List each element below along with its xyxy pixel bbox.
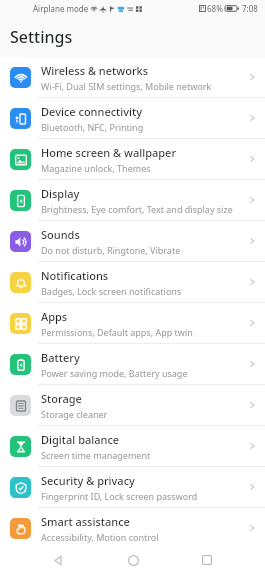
staticText: Wi-Fi, Dual SIM settings, Mobile network [41,80,212,92]
button[interactable]: Apps [0,303,265,343]
button[interactable]: Digital balance [0,426,265,466]
staticText: Storage [41,391,82,406]
button[interactable]: Home screen & wallpaper [0,139,265,179]
button[interactable]: Security & privacy [0,467,265,507]
button[interactable]: Display [0,180,265,220]
staticText: Apps [41,309,68,324]
staticText: Display [41,186,80,201]
staticText: Digital balance [41,432,120,447]
staticText: Badges, Lock screen notifications [41,285,182,297]
staticText: Power saving mode, Battery usage [41,367,188,379]
button[interactable]: Sounds [0,221,265,261]
button[interactable]: Wireless & networks [0,57,265,97]
staticText: Brightness, Eye comfort, Text and displa… [41,203,233,215]
staticText: Screen time management [41,449,151,461]
staticText: Wireless & networks [41,63,149,78]
staticText: 68% [207,3,223,14]
button[interactable]: Recent apps [190,545,224,575]
staticText: Settings [10,26,73,48]
staticText: Bluetooth, NFC, Printing [41,121,144,133]
staticText: Home screen & wallpaper [41,145,177,160]
button[interactable]: Storage [0,385,265,425]
staticText: 7:08 [242,3,258,14]
button[interactable]: Battery [0,344,265,384]
staticText: Storage cleaner [41,408,108,420]
staticText: Permissions, Default apps, App twin [41,326,193,338]
staticText: Do not disturb, Ringtone, Vibrate [41,244,181,256]
staticText: Security & privacy [41,473,135,488]
staticText: Smart assistance [41,514,130,529]
button[interactable]: Home [116,545,150,575]
staticText: Battery [41,350,80,365]
button[interactable]: Smart assistance [0,508,265,545]
staticText: Airplane mode [33,3,89,14]
button[interactable]: Notifications [0,262,265,302]
button[interactable]: Device connectivity [0,98,265,138]
button[interactable]: Back [41,545,75,575]
staticText: Notifications [41,268,109,283]
staticText: Fingerprint ID, Lock screen password [41,490,198,502]
staticText: Sounds [41,227,80,242]
staticText: Accessibility, Motion control [41,531,159,543]
staticText: Device connectivity [41,104,143,119]
staticText: Magazine unlock, Themes [41,162,151,174]
